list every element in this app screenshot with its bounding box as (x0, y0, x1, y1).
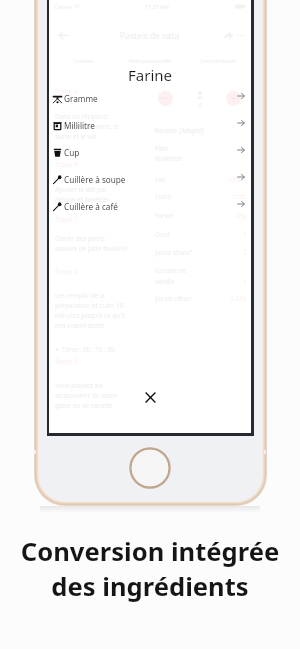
staticText: Cup (64, 147, 80, 158)
button[interactable]: Share (220, 28, 235, 43)
staticText: Millilitre (64, 120, 95, 131)
staticText: 1 (243, 230, 247, 239)
staticText: minutes jusqu'à ce qu'il (55, 311, 125, 320)
staticText: 2 (243, 248, 247, 257)
staticText: 6 (199, 101, 203, 109)
staticText: Gramme (64, 93, 98, 104)
staticText: Étape 9 (55, 357, 78, 366)
staticText: Farine (128, 65, 172, 85)
staticText: Sucre (155, 192, 172, 201)
button[interactable]: Gramme (49, 85, 251, 112)
staticText: Garnir des petits (55, 234, 105, 243)
staticText: Pasteis de nata (120, 30, 180, 41)
staticText: glace ou de canelle (55, 401, 113, 410)
staticText: Pâte (155, 144, 169, 153)
staticText: Note personnelle (129, 57, 172, 64)
staticText: m'a soient dorés (55, 321, 105, 330)
staticText: Ajouter le lait par (55, 185, 107, 194)
button[interactable]: Millilitre (49, 112, 251, 139)
button[interactable]: Commentaires (184, 55, 251, 66)
staticText: 350ml (228, 175, 247, 184)
staticText: Vous pouvez les (55, 381, 103, 390)
staticText: 150g (232, 192, 247, 201)
staticText: saupoudrer de sucre (55, 391, 118, 400)
staticText: vanille (155, 277, 175, 286)
staticText: Cuillère à soupe (64, 174, 126, 185)
staticText: 11:27 AM (145, 3, 169, 10)
staticText: dessus et fouetter (55, 195, 110, 204)
staticText: sucre et le sel (55, 132, 96, 141)
staticText: Dans un récipient, (55, 112, 110, 121)
staticText: Farine (155, 211, 174, 220)
staticText: Conversion intégrée des ingrédients (0, 534, 300, 604)
staticText: 20g (235, 211, 247, 220)
button[interactable]: Back (54, 26, 72, 44)
staticText: Contenu (73, 57, 94, 64)
staticText: feuilletée (155, 154, 183, 163)
staticText: Étape 7 (55, 215, 78, 224)
staticText: Étape 5 (55, 87, 78, 96)
button[interactable]: Note personnelle (117, 55, 184, 66)
staticText: Étape 8 (55, 267, 78, 276)
staticText: Timer: 00 : 10 : 00 (62, 345, 115, 354)
staticText: Carrier (54, 3, 72, 10)
staticText: Jus de citron (155, 294, 192, 303)
staticText: mélanger la farine, le (55, 122, 119, 131)
staticText: Gousse de (155, 266, 186, 275)
staticText: moules de pâte feuilleté (55, 244, 128, 253)
staticText: préparation et cuire 10 (55, 301, 124, 310)
staticText: Recette (Adapté) (155, 126, 204, 134)
staticText: 1 (243, 277, 247, 286)
button[interactable]: Cuillère à café (49, 193, 251, 220)
staticText: Oeuf (155, 230, 170, 239)
staticText: 2 CAS (230, 294, 247, 303)
button[interactable]: Cup (49, 139, 251, 166)
staticText: Commentaires (200, 57, 236, 64)
staticText: Étape 6 (55, 160, 78, 169)
button[interactable]: Cuillère à soupe (49, 166, 251, 193)
staticText: Lait (155, 175, 166, 184)
button[interactable]: Close (139, 386, 161, 408)
staticText: Cuillère à café (64, 201, 118, 212)
staticText: Jaune d'oeuf (155, 248, 192, 257)
staticText: Les remplir de la (55, 291, 105, 300)
